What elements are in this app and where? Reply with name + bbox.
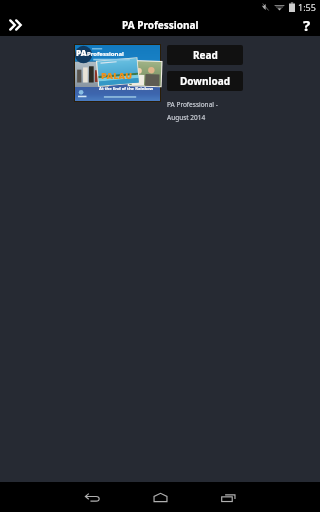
staticText: Professional bbox=[87, 50, 124, 58]
staticText: August 2014 bbox=[167, 113, 206, 122]
staticText: 1:55 bbox=[298, 1, 316, 13]
staticText: PA bbox=[76, 47, 87, 58]
button[interactable]: Download bbox=[167, 71, 243, 91]
button[interactable]: Navigation drawer bbox=[0, 14, 34, 36]
button[interactable]: Home bbox=[126, 482, 194, 512]
staticText: Read bbox=[193, 48, 218, 62]
button[interactable]: Recents bbox=[194, 482, 262, 512]
button[interactable]: Read bbox=[167, 45, 243, 65]
staticText: PA Professional - bbox=[167, 100, 218, 109]
staticText: At the End of the Rainbow bbox=[99, 86, 154, 92]
staticText: Download bbox=[180, 74, 230, 88]
button[interactable]: Help bbox=[294, 14, 320, 36]
staticText: ? bbox=[303, 15, 311, 35]
button[interactable]: PA Professional August 2014 cover bbox=[75, 45, 160, 101]
staticText: PA Professional bbox=[122, 18, 199, 32]
staticText: PALAU bbox=[101, 69, 133, 81]
button[interactable]: Back bbox=[58, 482, 126, 512]
